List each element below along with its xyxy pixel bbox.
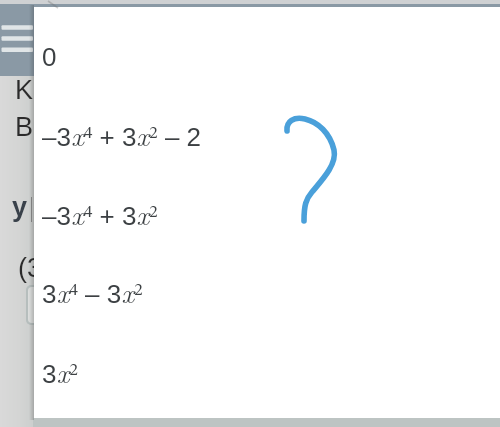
staticText: 3x2 (42, 351, 78, 391)
staticText: 0 (42, 42, 57, 71)
staticText: –3x4 + 3x2 – 2 (42, 114, 202, 154)
staticText: –3x4 + 3x2 (42, 193, 158, 233)
staticText: 3x4 – 3x2 (42, 271, 143, 311)
staticText: B (15, 112, 34, 142)
button[interactable]: Open navigation menu (0, 4, 500, 76)
staticText: (3 (18, 253, 43, 283)
staticText: K (15, 75, 34, 105)
staticText: y (12, 192, 28, 222)
